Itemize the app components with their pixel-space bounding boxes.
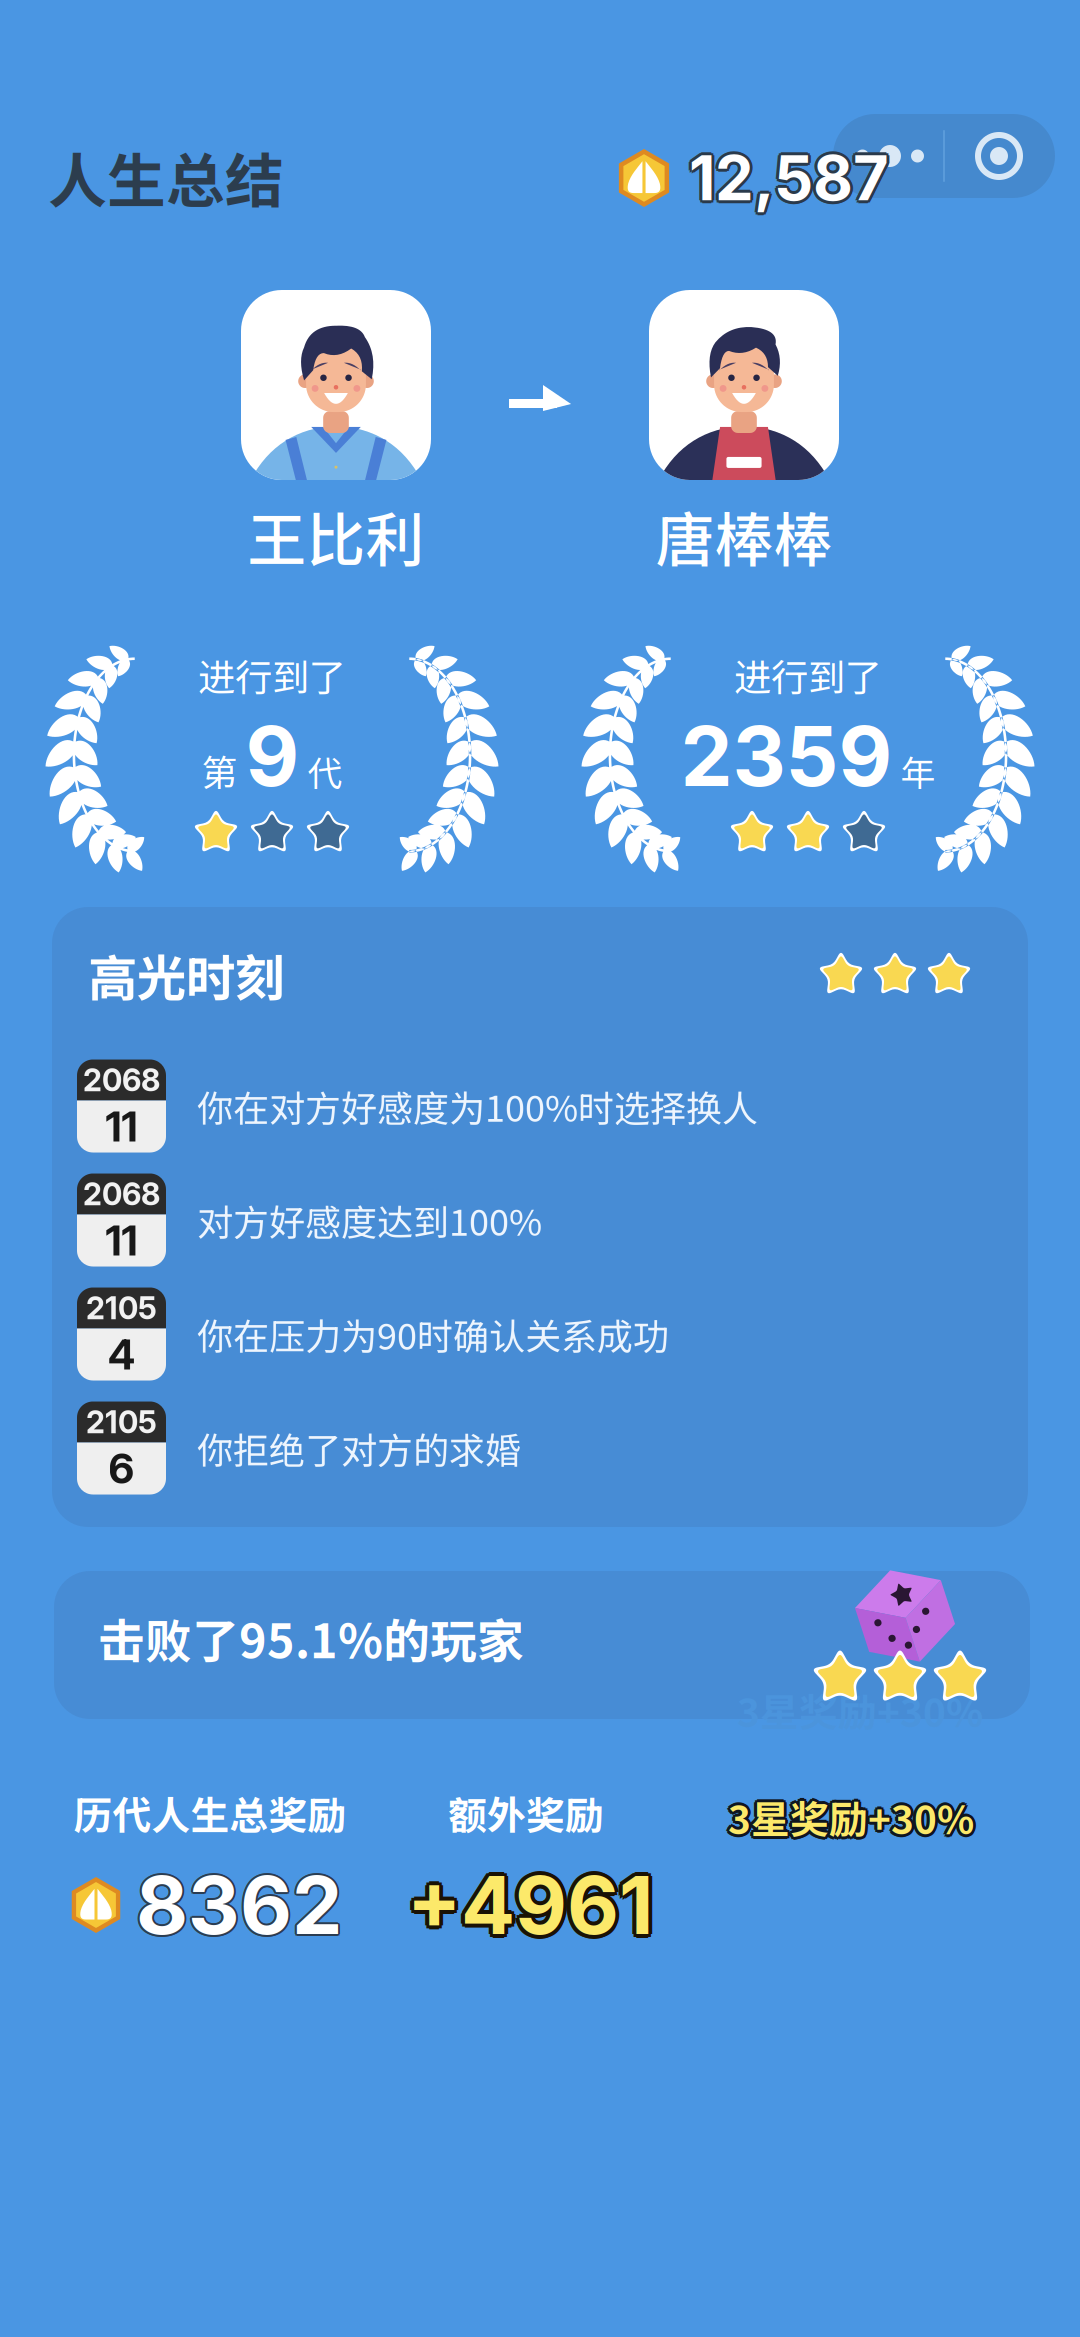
staticText: 12,587 [689, 144, 889, 218]
staticText: 唐棒棒 [655, 493, 832, 578]
staticText: 12,587 [691, 143, 891, 217]
staticText: 8362 [136, 1855, 342, 1951]
staticText: +4961 [407, 1853, 653, 1949]
staticText: 12,587 [686, 141, 886, 215]
staticText: 进行到了 [198, 648, 346, 702]
staticText: 8362 [135, 1858, 341, 1955]
staticText: +4961 [410, 1859, 656, 1956]
staticText: 12,587 [687, 143, 887, 217]
staticText: +4961 [407, 1861, 653, 1957]
staticText: 3星奖励+30% [737, 1682, 983, 1738]
staticText: +4961 [403, 1857, 649, 1953]
staticText: 8362 [134, 1857, 340, 1953]
staticText: 3星奖励+30% [728, 1792, 974, 1848]
staticText: 12,587 [689, 141, 889, 215]
staticText: +4961 [404, 1859, 650, 1956]
staticText: 额外奖励 [448, 1785, 604, 1841]
staticText: 8362 [138, 1857, 344, 1953]
button[interactable]: 击败了95.1%的玩家 [54, 1571, 1030, 1719]
staticText: 3星奖励+30% [730, 1787, 976, 1843]
staticText: 高光时刻 [88, 939, 284, 1011]
staticText: 2105 [86, 1403, 157, 1440]
staticText: 3星奖励+30% [730, 1791, 976, 1847]
staticText: 你在压力为90时确认关系成功 [197, 1308, 669, 1360]
staticText: 代 [307, 746, 342, 796]
staticText: 3星奖励+30% [728, 1789, 974, 1845]
staticText: 3星奖励+30% [731, 1789, 977, 1845]
staticText: 9 [245, 706, 299, 806]
staticText: +4961 [411, 1857, 657, 1953]
staticText: 3星奖励+30% [728, 1786, 974, 1842]
staticText: 12,587 [692, 141, 892, 215]
staticText: 11 [105, 1215, 137, 1265]
staticText: 王比利 [247, 493, 424, 578]
staticText: 8362 [135, 1855, 341, 1952]
staticText: 击败了95.1%的玩家 [98, 1604, 524, 1672]
staticText: 进行到了 [734, 648, 882, 702]
staticText: 你在对方好感度为100%时选择换人 [197, 1080, 758, 1132]
staticText: 2068 [83, 1175, 160, 1212]
staticText: 2359 [680, 706, 892, 806]
staticText: 8362 [136, 1857, 342, 1953]
staticText: 12,587 [691, 139, 891, 213]
staticText: 第 [201, 744, 237, 796]
staticText: +4961 [407, 1857, 653, 1953]
staticText: 3星奖励+30% [726, 1791, 972, 1847]
staticText: 你拒绝了对方的求婚 [197, 1422, 521, 1474]
staticText: 年 [900, 746, 935, 796]
button[interactable]: Menu [833, 114, 1055, 198]
staticText: 2105 [86, 1289, 157, 1326]
staticText: 12,587 [687, 139, 887, 213]
staticText: 8362 [137, 1858, 343, 1955]
staticText: 3星奖励+30% [726, 1787, 972, 1843]
staticText: 对方好感度达到100% [197, 1194, 542, 1246]
staticText: 历代人生总奖励 [73, 1785, 346, 1841]
staticText: 4 [108, 1329, 135, 1379]
staticText: 8362 [136, 1859, 342, 1955]
staticText: +4961 [410, 1854, 656, 1951]
staticText: +4961 [404, 1854, 650, 1951]
staticText: 人生总结 [48, 134, 284, 219]
staticText: 12,587 [689, 138, 889, 212]
button[interactable]: 人生总结 [48, 137, 448, 217]
staticText: 2068 [83, 1061, 160, 1098]
staticText: 3星奖励+30% [725, 1789, 971, 1845]
staticText: 6 [108, 1443, 134, 1493]
staticText: 8362 [137, 1855, 343, 1952]
staticText: 11 [105, 1101, 137, 1151]
